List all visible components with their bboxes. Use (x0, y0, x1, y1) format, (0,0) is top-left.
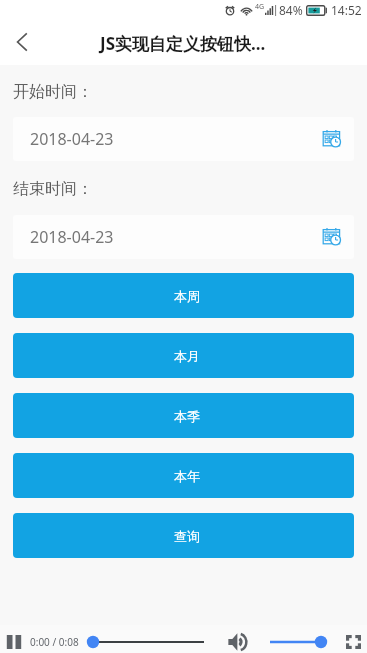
button[interactable]: 2018-04-23 (13, 117, 354, 161)
button[interactable]: Fullscreen (346, 635, 361, 649)
staticText: 本季 (174, 408, 200, 424)
button[interactable]: 本季 (13, 393, 354, 438)
staticText: 开始时间： (13, 82, 93, 102)
staticText: 本月 (174, 348, 200, 364)
staticText: 84% (279, 2, 303, 18)
staticText: 14:52 (331, 2, 362, 18)
staticText: 2018-04-23 (30, 128, 114, 150)
button[interactable]: Back (0, 19, 44, 65)
staticText: 2018-04-23 (30, 226, 114, 248)
button[interactable]: Volume (228, 633, 246, 651)
staticText: 本周 (174, 288, 200, 304)
staticText: 本年 (174, 468, 200, 484)
button[interactable]: 查询 (13, 513, 354, 558)
staticText: JS实现自定义按钮快... (100, 32, 266, 55)
button[interactable]: 本年 (13, 453, 354, 498)
staticText: 查询 (174, 528, 200, 544)
button[interactable]: 本月 (13, 333, 354, 378)
button[interactable]: Pause (6, 634, 22, 650)
staticText: 4G (255, 2, 265, 12)
other: Pick date (322, 227, 342, 247)
button[interactable]: Seek (86, 633, 206, 651)
button[interactable]: 2018-04-23 (13, 215, 354, 259)
button[interactable]: 本周 (13, 273, 354, 318)
other: Pick date (322, 129, 342, 149)
staticText: 0:00 / 0:08 (30, 635, 79, 649)
staticText: 结束时间： (13, 179, 93, 199)
button[interactable]: Volume level (266, 633, 328, 651)
